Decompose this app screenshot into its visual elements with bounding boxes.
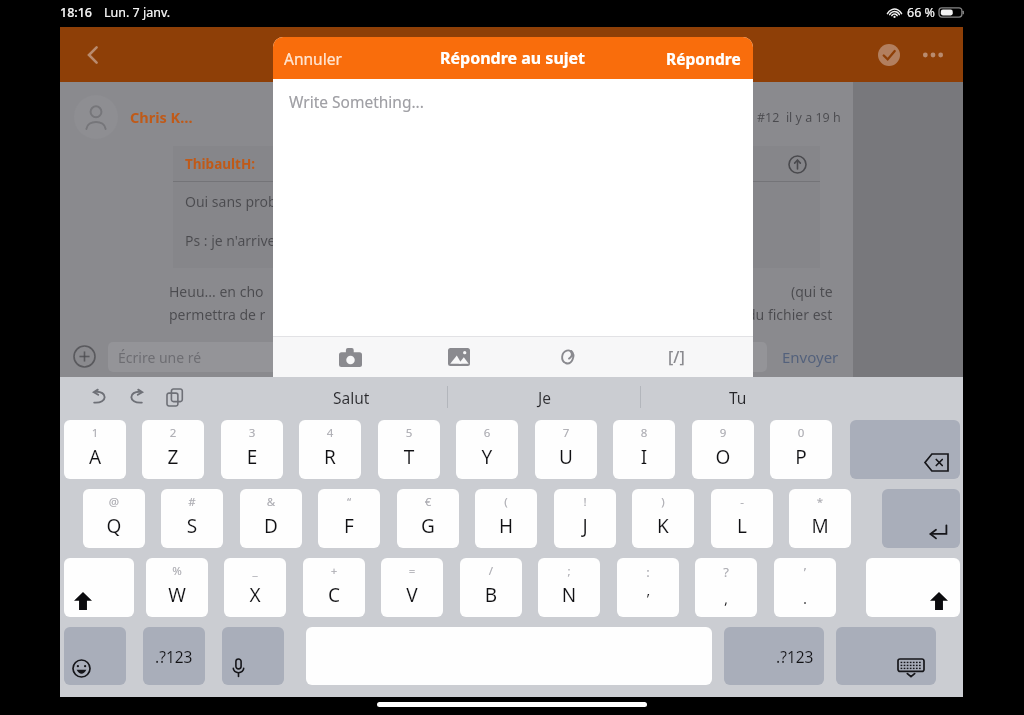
staticText: J	[554, 513, 616, 539]
staticText: 18:16	[60, 4, 93, 21]
button[interactable]: Paste	[156, 378, 194, 416]
button[interactable]: _	[224, 558, 286, 617]
button[interactable]: :	[617, 558, 679, 617]
button[interactable]: Hide keyboard	[836, 627, 936, 685]
button[interactable]: 7	[535, 420, 597, 479]
button[interactable]: 3	[221, 420, 283, 479]
staticText: ,	[695, 588, 757, 608]
button[interactable]: 4	[299, 420, 361, 479]
button[interactable]: =	[381, 558, 443, 617]
staticText: Ps : je n'arrive…	[185, 231, 287, 250]
button[interactable]: Dictate	[222, 627, 284, 685]
button[interactable]: ’	[774, 558, 836, 617]
button[interactable]: Back	[66, 27, 120, 82]
button[interactable]: 9	[692, 420, 754, 479]
button[interactable]: Backspace	[850, 420, 960, 479]
staticText: +	[303, 563, 365, 579]
staticText: C	[303, 582, 365, 608]
button[interactable]: +	[303, 558, 365, 617]
staticText: Lun. 7 janv.	[104, 4, 171, 21]
staticText: G	[397, 513, 459, 539]
staticText: O	[692, 444, 754, 470]
staticText: N	[538, 582, 600, 608]
staticText: Annuler	[284, 48, 342, 69]
button[interactable]: “	[318, 489, 380, 548]
staticText: du fichier est	[747, 305, 833, 324]
button[interactable]: Undo	[80, 378, 118, 416]
button[interactable]: ;	[538, 558, 600, 617]
button[interactable]: 0	[770, 420, 832, 479]
button[interactable]: 1	[64, 420, 126, 479]
button[interactable]: Redo	[118, 378, 156, 416]
button[interactable]: Annuler	[273, 37, 353, 79]
staticText: R	[299, 444, 361, 470]
staticText: T	[378, 444, 440, 470]
button[interactable]: Insert image	[427, 337, 491, 377]
button[interactable]: *	[789, 489, 851, 548]
button[interactable]: Insert code	[644, 337, 708, 377]
staticText: E	[221, 444, 283, 470]
button[interactable]: Shift	[64, 558, 134, 617]
button[interactable]: #	[161, 489, 223, 548]
button[interactable]: Write Something...	[273, 79, 753, 336]
button[interactable]: !	[554, 489, 616, 548]
button[interactable]: Go to quoted post	[784, 151, 810, 177]
button[interactable]: %	[146, 558, 208, 617]
button[interactable]: Écrire une ré	[108, 342, 767, 372]
staticText: 66 %	[907, 4, 935, 21]
button[interactable]: Emoji	[64, 627, 126, 685]
staticText: ThibaultH:	[185, 155, 255, 173]
staticText: ’	[774, 563, 836, 581]
staticText: .?123	[155, 646, 193, 667]
staticText: A	[64, 444, 126, 470]
staticText: /	[460, 563, 522, 579]
button[interactable]: 6	[456, 420, 518, 479]
staticText: Heuu... en cho	[169, 282, 264, 301]
staticText: X	[224, 582, 286, 608]
staticText: Chris K…	[130, 107, 193, 127]
button[interactable]: €	[397, 489, 459, 548]
button[interactable]: 2	[142, 420, 204, 479]
staticText: -	[711, 494, 773, 510]
button[interactable]: /	[460, 558, 522, 617]
staticText: Z	[142, 444, 204, 470]
staticText: (qui te	[791, 282, 833, 301]
button[interactable]: Add attachment	[60, 336, 108, 377]
button[interactable]: .?123	[724, 627, 824, 685]
button[interactable]: )	[632, 489, 694, 548]
button[interactable]: More options	[911, 33, 955, 77]
button[interactable]: Je	[448, 377, 641, 417]
staticText: .?123	[776, 646, 814, 667]
staticText: M	[789, 513, 851, 539]
staticText: #12 il y a 19 h	[757, 109, 841, 126]
staticText: “	[318, 494, 380, 510]
button[interactable]: 5	[378, 420, 440, 479]
button[interactable]: &	[240, 489, 302, 548]
staticText: 6	[456, 425, 518, 441]
button[interactable]: Répondre	[654, 37, 753, 79]
staticText: ;	[538, 563, 600, 579]
staticText: =	[381, 563, 443, 579]
button[interactable]: Mark read	[867, 33, 911, 77]
button[interactable]: @	[83, 489, 145, 548]
button[interactable]: Attach file	[535, 337, 599, 377]
button[interactable]: Tu	[641, 377, 834, 417]
staticText: #	[161, 494, 223, 510]
button[interactable]: Take photo	[318, 337, 382, 377]
button[interactable]: Shift	[866, 558, 960, 617]
staticText: Q	[83, 513, 145, 539]
button[interactable]: 8	[613, 420, 675, 479]
button[interactable]: Envoyer	[767, 336, 853, 377]
button[interactable]: Return	[882, 489, 960, 548]
staticText: B	[460, 582, 522, 608]
staticText: (	[475, 494, 537, 510]
staticText: [/]	[668, 346, 685, 368]
button[interactable]: .?123	[143, 627, 205, 685]
button[interactable]: ?	[695, 558, 757, 617]
button[interactable]: (	[475, 489, 537, 548]
button[interactable]: Salut	[254, 377, 448, 417]
staticText: 5	[378, 425, 440, 441]
button[interactable]: -	[711, 489, 773, 548]
staticText: Envoyer	[782, 347, 839, 367]
